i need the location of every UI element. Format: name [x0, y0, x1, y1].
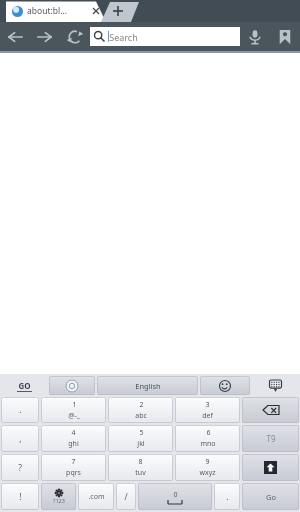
button[interactable]: 9 wxyz — [175, 454, 240, 481]
staticText: ghi — [68, 439, 79, 449]
staticText: T9 — [266, 433, 276, 444]
button[interactable]: Settings — [49, 376, 95, 395]
button[interactable]: 3 def — [175, 397, 240, 423]
staticText: wxyz — [199, 468, 216, 478]
staticText: ! — [19, 491, 22, 503]
button[interactable]: . — [1, 397, 39, 423]
button[interactable]: Backspace — [242, 397, 299, 423]
button[interactable]: Go — [1, 376, 47, 395]
button[interactable]: Hide keyboard — [252, 376, 299, 395]
staticText: 2 — [139, 400, 144, 410]
button[interactable]: .com — [78, 483, 114, 510]
button[interactable]: Forward — [30, 22, 60, 51]
button[interactable]: Emoji — [200, 376, 250, 395]
staticText: GO — [18, 380, 31, 391]
button[interactable]: 7 pqrs — [41, 454, 106, 481]
staticText: 5 — [139, 428, 144, 438]
button[interactable]: T9 — [242, 425, 299, 452]
staticText: 3 — [205, 400, 210, 410]
staticText: pqrs — [66, 468, 81, 478]
button[interactable]: ! — [1, 483, 39, 510]
staticText: ? — [18, 462, 22, 474]
button[interactable]: Bookmarks — [270, 22, 300, 51]
button[interactable]: Voice search — [240, 22, 270, 51]
button[interactable]: Close tab — [90, 5, 102, 17]
staticText: English — [135, 381, 161, 391]
button[interactable]: Search — [90, 27, 240, 46]
button[interactable]: 5 jkl — [108, 425, 173, 452]
button[interactable]: about:bl… — [6, 0, 106, 22]
button[interactable]: English — [97, 376, 198, 395]
staticText: / — [124, 491, 128, 503]
button[interactable]: Symbols — [41, 483, 76, 510]
button[interactable]: 4 ghi — [41, 425, 106, 452]
staticText: 6 — [206, 428, 211, 438]
button[interactable]: 2 abc — [108, 397, 173, 423]
staticText: Go — [266, 492, 276, 502]
staticText: ?123 — [53, 497, 65, 504]
button[interactable]: Go key — [242, 483, 299, 510]
button[interactable]: New tab — [101, 0, 145, 22]
staticText: tuv — [135, 468, 146, 478]
button[interactable]: 6 mno — [175, 425, 240, 452]
button[interactable]: ? — [1, 454, 39, 481]
button[interactable]: , — [1, 425, 39, 452]
staticText: mno — [200, 439, 216, 449]
staticText: . — [19, 404, 22, 416]
staticText: 8 — [138, 457, 143, 467]
button[interactable]: Shift — [242, 454, 299, 481]
button[interactable]: Back — [0, 22, 30, 51]
staticText: @-_ — [68, 411, 80, 421]
staticText: 7 — [71, 457, 76, 467]
staticText: Search — [109, 31, 138, 43]
staticText: . — [226, 491, 229, 503]
button[interactable]: / — [116, 483, 136, 510]
staticText: def — [202, 411, 213, 421]
staticText: abc — [135, 411, 147, 421]
staticText: 0 — [173, 490, 178, 500]
staticText: .com — [88, 492, 105, 502]
button[interactable]: Space — [138, 483, 212, 510]
button[interactable]: 1 @-_ — [41, 397, 106, 423]
staticText: about:bl… — [27, 5, 67, 17]
staticText: 1 — [72, 400, 77, 410]
staticText: 9 — [205, 457, 210, 467]
staticText: jkl — [137, 439, 145, 449]
button[interactable]: Reload — [60, 22, 90, 51]
staticText: 4 — [71, 428, 76, 438]
button[interactable]: 8 tuv — [108, 454, 173, 481]
staticText: , — [19, 433, 22, 445]
button[interactable]: Period — [214, 483, 240, 510]
